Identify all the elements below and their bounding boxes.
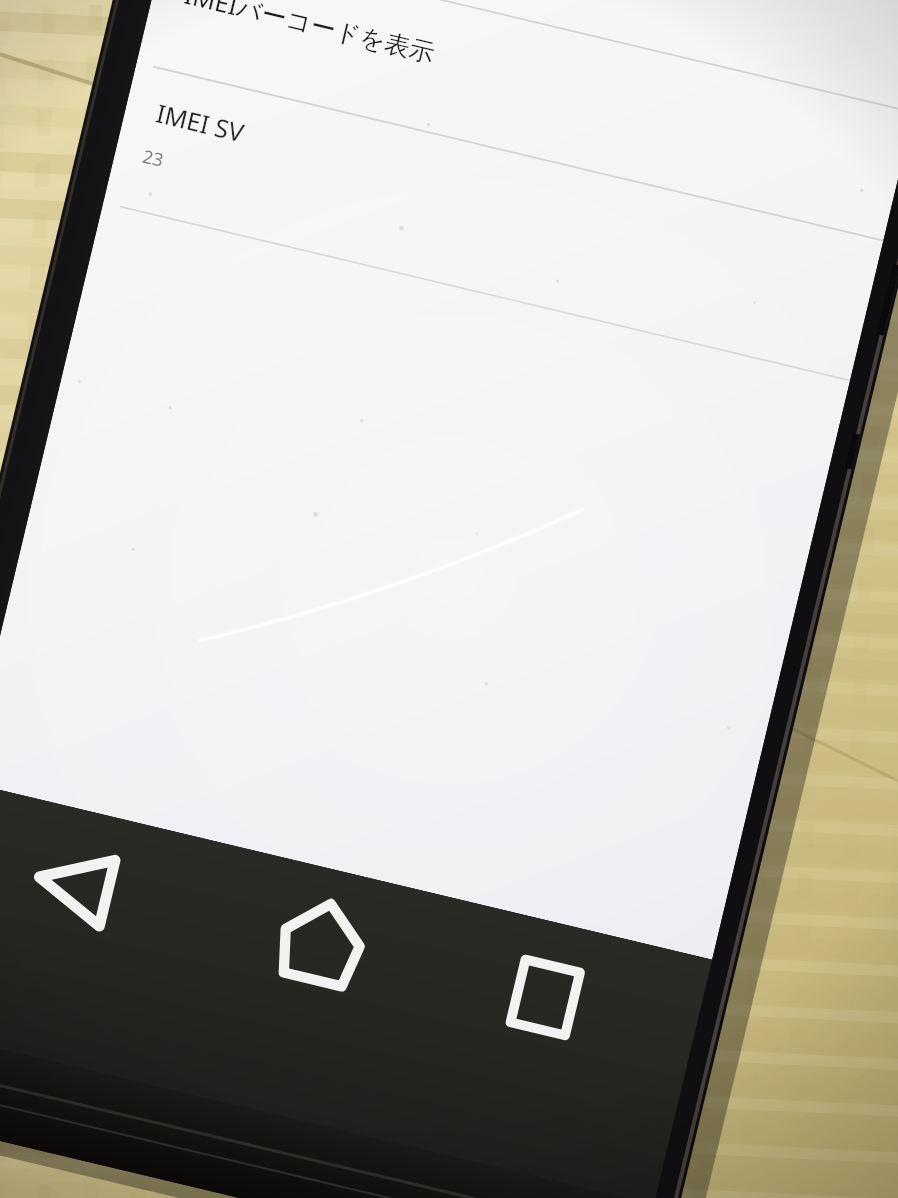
button[interactable]: Device information screen photo — [0, 0, 898, 1198]
other: IMEI barcode and IMEI SV list — [0, 0, 898, 1198]
